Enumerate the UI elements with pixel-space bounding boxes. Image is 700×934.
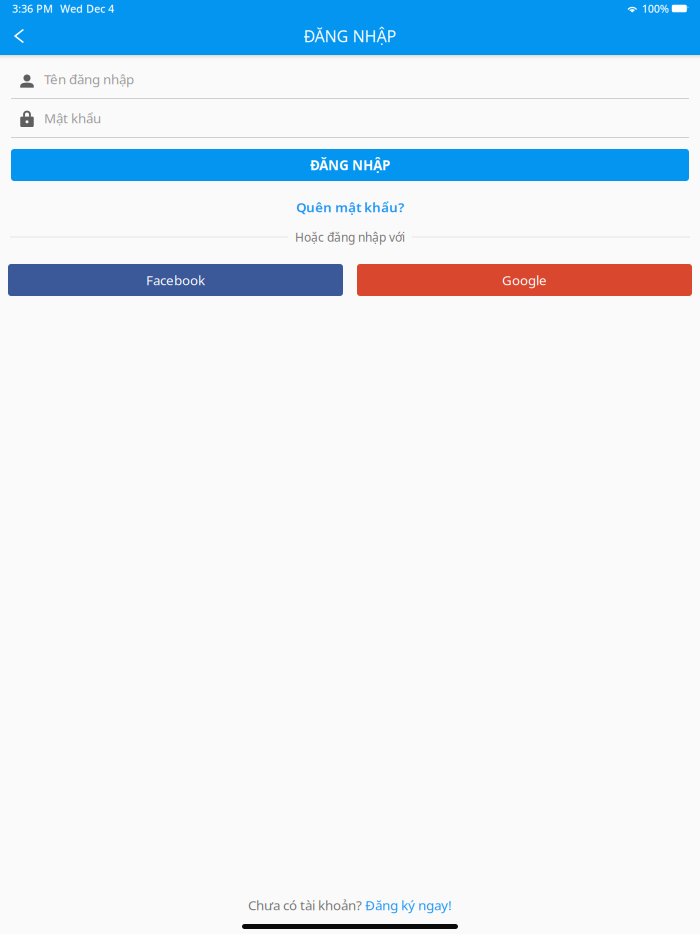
- button[interactable]: Tên đăng nhập: [0, 60, 700, 98]
- button[interactable]: Chưa có tài khoản?: [248, 894, 452, 916]
- staticText: Đăng ký ngay!: [365, 896, 452, 914]
- staticText: Chưa có tài khoản?: [248, 896, 365, 914]
- staticText: Wed Dec 4: [60, 1, 114, 16]
- staticText: 100%: [642, 1, 669, 16]
- button[interactable]: Quên mật khẩu?: [0, 194, 700, 220]
- button[interactable]: Google: [357, 264, 692, 296]
- staticText: Mật khẩu: [44, 109, 101, 127]
- button[interactable]: Back: [0, 17, 38, 55]
- button[interactable]: Facebook: [8, 264, 343, 296]
- staticText: 3:36 PM: [12, 1, 53, 16]
- button[interactable]: Mật khẩu: [0, 99, 700, 137]
- staticText: ĐĂNG NHẬP: [310, 156, 390, 174]
- staticText: Quên mật khẩu?: [296, 198, 404, 216]
- staticText: Tên đăng nhập: [44, 70, 134, 88]
- button[interactable]: ĐĂNG NHẬP: [11, 149, 689, 181]
- staticText: Google: [502, 271, 547, 289]
- staticText: Facebook: [146, 271, 205, 289]
- staticText: ĐĂNG NHẬP: [303, 25, 396, 47]
- staticText: Hoặc đăng nhập với: [295, 229, 405, 245]
